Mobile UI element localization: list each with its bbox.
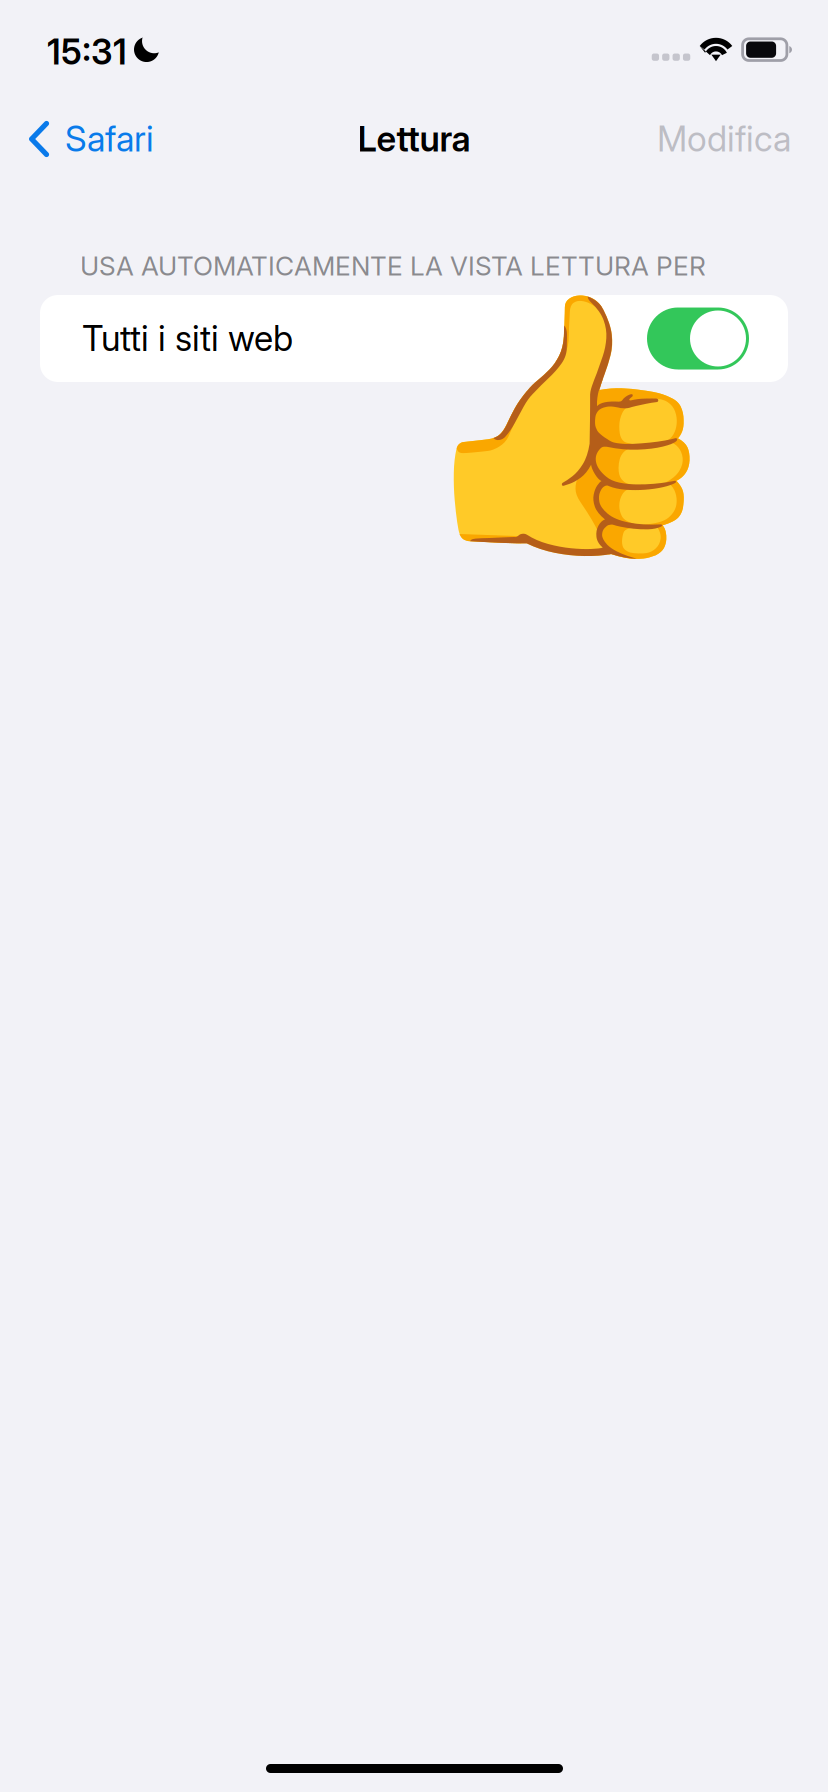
button[interactable]: Tutti i siti web [40, 295, 788, 382]
button[interactable]: Safari [0, 101, 172, 177]
button[interactable]: Tutti i siti web, attivo [647, 307, 749, 369]
staticText: Modifica [657, 118, 791, 160]
staticText: 👍 [410, 277, 725, 574]
staticText: USA AUTOMATICAMENTE LA VISTA LETTURA PER [80, 250, 706, 282]
staticText: Tutti i siti web [82, 317, 293, 359]
staticText: 15:31 [47, 31, 127, 73]
staticText: Lettura [357, 118, 470, 160]
staticText: Safari [65, 118, 154, 160]
button[interactable]: Modifica [635, 101, 828, 177]
